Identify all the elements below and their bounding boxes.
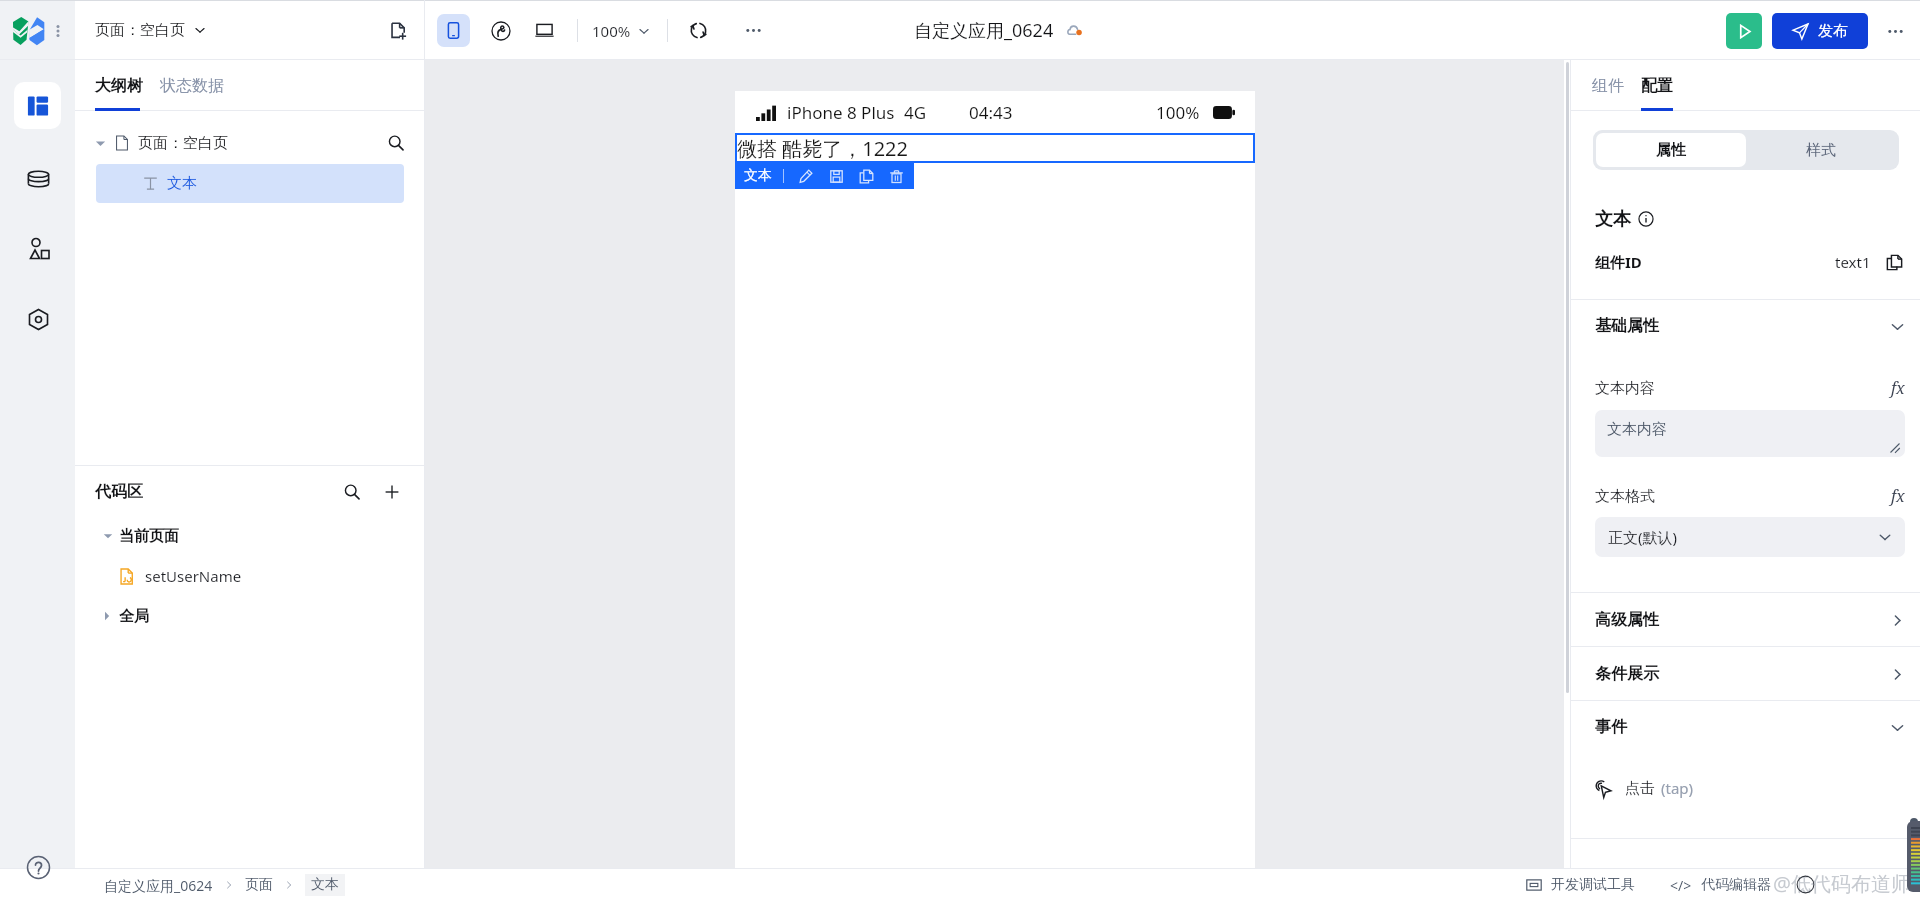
button[interactable]: Phone preview (437, 14, 470, 47)
staticText: 文本 (167, 174, 197, 193)
button[interactable]: Data (18, 160, 58, 200)
staticText: @低代码布道师 (1773, 870, 1911, 897)
staticText: text1 (1835, 252, 1871, 272)
staticText: 组件ID (1595, 252, 1642, 272)
button[interactable]: New page (388, 20, 408, 40)
staticText: 属性 (1656, 141, 1686, 160)
button[interactable]: Logo (12, 14, 45, 47)
button[interactable]: 条件展示 (1595, 661, 1905, 687)
button[interactable]: Copy (855, 163, 877, 189)
button[interactable]: 高级属性 (1595, 607, 1905, 633)
button[interactable]: 全局 (102, 602, 404, 630)
button[interactable]: 基础属性 (1595, 313, 1905, 339)
staticText: 100% (1156, 101, 1200, 124)
staticText: 文本内容 (1595, 379, 1655, 398)
button[interactable]: Desktop preview (528, 14, 561, 47)
staticText: iPhone 8 Plus (787, 101, 895, 124)
staticText: 开发调试工具 (1551, 876, 1635, 894)
button[interactable]: Components (18, 229, 58, 269)
staticText: 条件展示 (1595, 664, 1659, 684)
staticText: 当前页面 (119, 527, 179, 546)
button[interactable]: 自定义应用_0624 (914, 17, 1084, 43)
staticText: 基础属性 (1595, 316, 1659, 336)
button[interactable]: 开发调试工具 (1526, 874, 1635, 896)
button[interactable]: setUserName (118, 562, 404, 590)
button[interactable]: Refresh (682, 14, 715, 47)
staticText: 点击 (1625, 779, 1655, 798)
button[interactable]: Save (825, 163, 847, 189)
staticText: fx (1891, 377, 1905, 399)
staticText: 代码区 (95, 482, 143, 502)
button[interactable]: Settings (18, 299, 58, 339)
button[interactable]: 属性 (1596, 133, 1746, 167)
staticText: (tap) (1661, 778, 1694, 798)
staticText: 100% (592, 21, 631, 41)
staticText: fx (1891, 485, 1905, 507)
staticText: 配置 (1641, 76, 1673, 96)
staticText: 04:43 (969, 101, 1013, 124)
button[interactable]: Search code (340, 480, 364, 504)
button[interactable]: 样式 (1746, 133, 1896, 167)
button[interactable]: Help (18, 847, 58, 887)
button[interactable]: Copy component id (1883, 251, 1905, 273)
staticText: 大纲树 (95, 76, 143, 96)
staticText: setUserName (145, 566, 242, 586)
button[interactable]: More options (737, 14, 770, 47)
button[interactable]: 配置 (1641, 76, 1673, 96)
button[interactable]: Run (1726, 13, 1762, 49)
button[interactable]: Delete (885, 163, 907, 189)
button[interactable]: 页面：空白页 (95, 18, 206, 42)
button[interactable]: 大纲树 (95, 76, 143, 96)
button[interactable]: 状态数据 (160, 76, 224, 96)
staticText: 发布 (1818, 22, 1848, 41)
staticText: 代码编辑器 (1701, 876, 1771, 894)
staticText: 文本 (1595, 208, 1631, 231)
staticText: 4G (904, 101, 927, 124)
button[interactable]: 正文(默认) (1595, 517, 1905, 557)
button[interactable]: 当前页面 (103, 522, 404, 550)
staticText: </> (1670, 876, 1692, 895)
staticText: 文本内容 (1607, 420, 1667, 439)
button[interactable]: 文本内容 (1595, 410, 1905, 457)
button[interactable]: Add code (380, 480, 404, 504)
button[interactable]: 发布 (1772, 13, 1868, 49)
staticText: 页面：空白页 (138, 134, 228, 153)
staticText: 微搭 酷毙了，1222 (737, 135, 908, 162)
button[interactable]: 页面：空白页 (95, 128, 404, 158)
button[interactable]: 自定义应用_0624 (104, 874, 345, 896)
button[interactable]: 事件 (1595, 714, 1905, 740)
button[interactable]: Layout (14, 82, 61, 129)
staticText: 正文(默认) (1608, 527, 1678, 547)
staticText: 文本 (744, 167, 772, 185)
button[interactable]: More (48, 16, 68, 46)
staticText: 页面：空白页 (95, 21, 185, 40)
staticText: 组件 (1592, 76, 1624, 96)
staticText: 文本格式 (1595, 487, 1655, 506)
button[interactable]: Edit (795, 163, 817, 189)
staticText: 文本 (311, 876, 339, 894)
staticText: 自定义应用_0624 (104, 876, 213, 895)
staticText: 页面 (245, 876, 273, 894)
staticText: 状态数据 (160, 76, 224, 96)
button[interactable]: 100% (592, 19, 650, 42)
staticText: 全局 (119, 607, 149, 626)
button[interactable]: Mini program preview (484, 14, 517, 47)
button[interactable]: 微搭 酷毙了，1222 (735, 133, 1255, 163)
button[interactable]: </> (1670, 874, 1771, 896)
staticText: 事件 (1595, 717, 1627, 737)
button[interactable]: 组件 (1592, 76, 1624, 96)
staticText: 自定义应用_0624 (914, 18, 1054, 43)
button[interactable]: 点击 (1595, 775, 1905, 801)
button[interactable]: 文本 (96, 164, 404, 203)
staticText: 高级属性 (1595, 610, 1659, 630)
button[interactable]: More (1880, 16, 1910, 46)
staticText: 样式 (1806, 141, 1836, 160)
